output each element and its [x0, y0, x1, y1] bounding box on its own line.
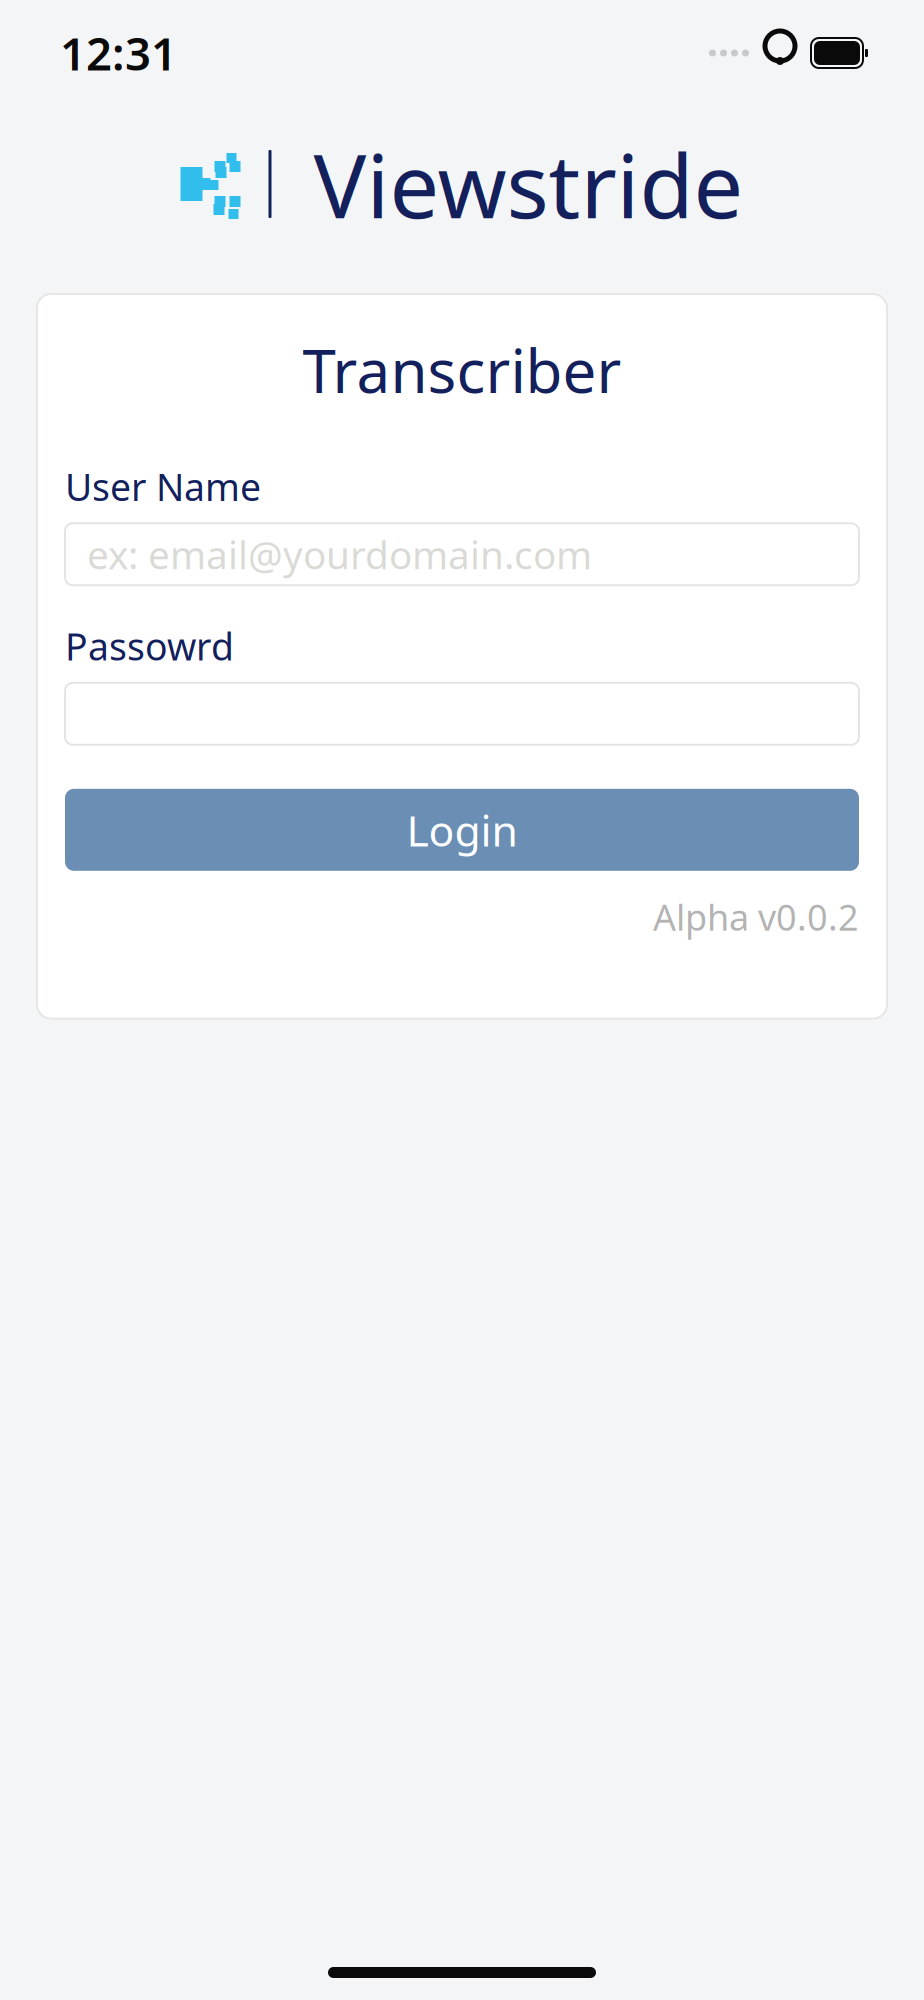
button[interactable]: ex: email@yourdomain.com	[65, 523, 859, 585]
staticText: 12:31	[60, 23, 177, 83]
staticText: Alpha v0.0.2	[653, 893, 859, 941]
staticText: Transcriber	[302, 330, 621, 410]
staticText: ex: email@yourdomain.com	[87, 529, 592, 580]
staticText: Login	[406, 801, 517, 858]
staticText: User Name	[65, 462, 261, 511]
staticText: Passowrd	[65, 621, 234, 671]
button[interactable]: Login	[65, 789, 859, 871]
button[interactable]	[65, 683, 859, 745]
staticText: Viewstride	[313, 126, 743, 242]
